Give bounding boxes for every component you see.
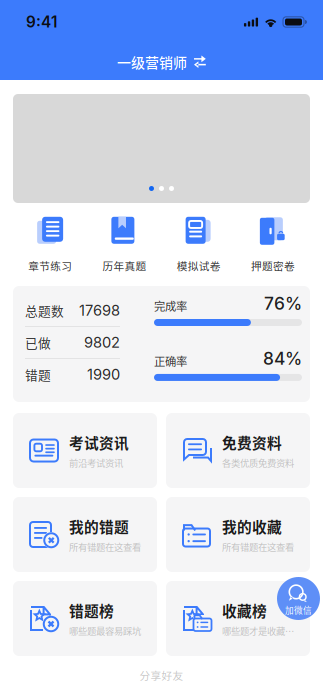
button[interactable]: 我的错题 xyxy=(13,497,157,572)
button[interactable]: 加微信 xyxy=(277,577,320,620)
button[interactable]: 章节练习 xyxy=(13,218,87,272)
staticText: 错题 xyxy=(25,365,51,384)
button[interactable]: 模拟试卷 xyxy=(161,218,236,272)
button[interactable]: 一级营销师 xyxy=(109,44,214,80)
staticText: 1990 xyxy=(87,366,120,383)
staticText: 哪些题最容易踩坑 xyxy=(69,624,141,637)
staticText: 押题密卷 xyxy=(251,258,295,273)
button[interactable]: 收藏榜 xyxy=(166,581,310,656)
staticText: 84% xyxy=(263,348,302,369)
button[interactable]: 错题榜 xyxy=(13,581,157,656)
staticText: 已做 xyxy=(25,333,51,352)
staticText: 一级营销师 xyxy=(117,52,187,72)
staticText: 模拟试卷 xyxy=(177,258,221,273)
staticText: 哪些题才是收藏之最 xyxy=(222,624,296,637)
staticText: 各类优质免费资料 xyxy=(222,456,294,469)
button[interactable]: 免费资料 xyxy=(166,413,310,488)
staticText: 9802 xyxy=(84,334,120,351)
staticText: 9:41 xyxy=(26,13,57,31)
staticText: 收藏榜 xyxy=(222,600,267,621)
staticText: 错题榜 xyxy=(69,600,114,621)
staticText: 我的收藏 xyxy=(222,516,282,537)
button[interactable]: 分享好友 xyxy=(13,667,310,683)
button[interactable]: 押题密卷 xyxy=(236,218,310,272)
staticText: 章节练习 xyxy=(28,258,72,273)
staticText: 所有错题在这查看 xyxy=(69,540,141,553)
button[interactable]: 我的收藏 xyxy=(166,497,310,572)
staticText: 17698 xyxy=(79,302,120,319)
staticText: 正确率 xyxy=(154,352,187,369)
staticText: 历年真题 xyxy=(102,258,146,273)
staticText: 总题数 xyxy=(25,301,64,320)
staticText: 加微信 xyxy=(285,604,312,616)
button[interactable]: 历年真题 xyxy=(87,218,161,272)
staticText: 考试资讯 xyxy=(69,432,129,453)
staticText: 免费资料 xyxy=(222,432,282,453)
staticText: 分享好友 xyxy=(139,667,183,683)
staticText: 我的错题 xyxy=(69,516,129,537)
staticText: 完成率 xyxy=(154,298,187,314)
button[interactable]: 考试资讯 xyxy=(13,413,157,488)
staticText: 76% xyxy=(264,293,302,314)
staticText: 前沿考试资讯 xyxy=(69,456,123,469)
staticText: 所有错题在这查看 xyxy=(222,540,294,553)
